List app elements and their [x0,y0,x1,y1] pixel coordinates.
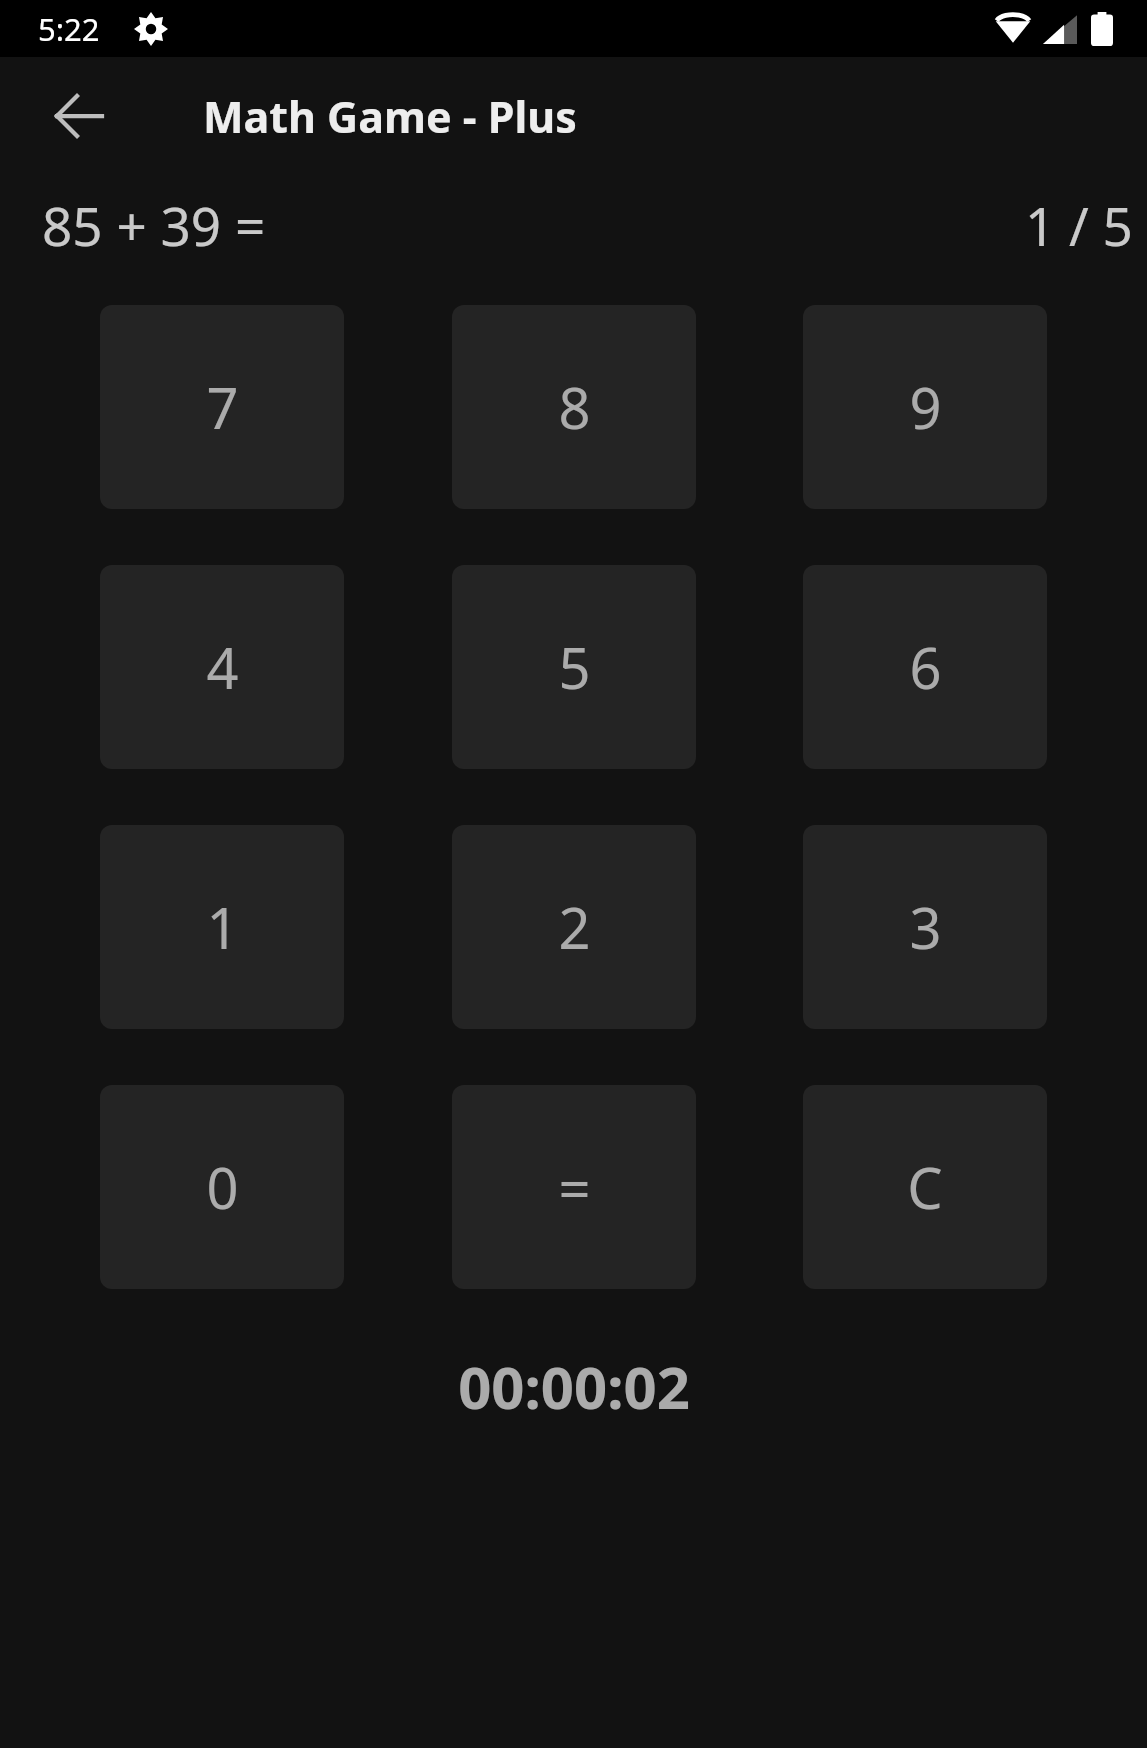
staticText: 7 [206,369,239,445]
button[interactable]: 6 [803,565,1047,769]
staticText: 5 [558,629,591,705]
staticText: 8 [558,369,591,445]
button[interactable]: 2 [452,825,696,1029]
button[interactable]: 7 [100,305,344,509]
button[interactable]: 9 [803,305,1047,509]
staticText: 6 [909,629,942,705]
staticText: 4 [206,629,239,705]
staticText: 1 [206,889,239,965]
button[interactable]: 0 [100,1085,344,1289]
staticText: C [907,1149,943,1225]
staticText: 85 + 39 = [42,189,266,261]
button[interactable]: 8 [452,305,696,509]
staticText: 2 [558,889,591,965]
button[interactable]: 5 [452,565,696,769]
button[interactable]: Back [31,68,127,164]
staticText: = [558,1149,591,1225]
staticText: 1 / 5 [1025,189,1133,261]
button[interactable]: C [803,1085,1047,1289]
staticText: 0 [206,1149,239,1225]
staticText: Math Game - Plus [203,87,577,146]
staticText: 5:22 [38,8,100,50]
button[interactable]: 1 [100,825,344,1029]
staticText: 00:00:02 [458,1347,690,1426]
staticText: 9 [909,369,942,445]
button[interactable]: 4 [100,565,344,769]
button[interactable]: = [452,1085,696,1289]
button[interactable]: 3 [803,825,1047,1029]
staticText: 3 [909,889,942,965]
